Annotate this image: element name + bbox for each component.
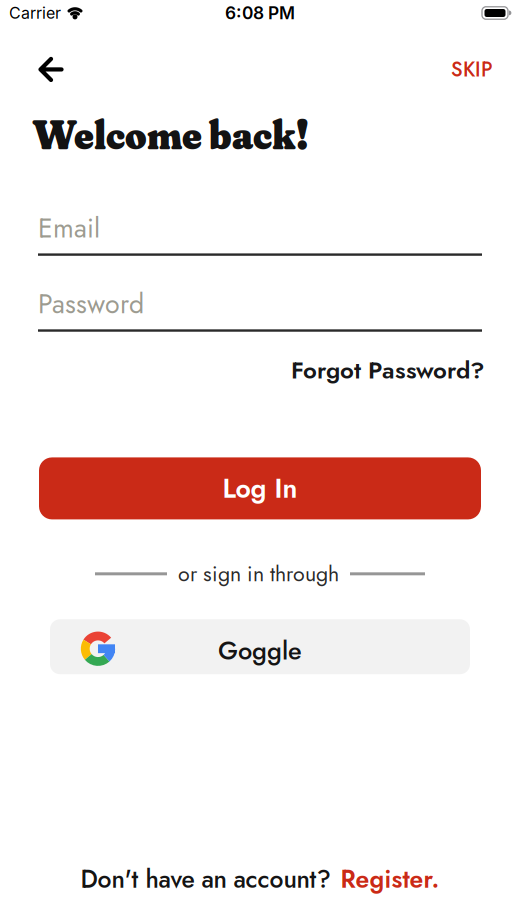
staticText: Email (38, 209, 100, 247)
staticText: Don't have an account? (80, 861, 330, 897)
button[interactable]: Back (38, 57, 63, 81)
staticText: Forgot Password? (291, 353, 485, 387)
button[interactable]: SKIP (451, 55, 493, 84)
staticText: SKIP (451, 55, 493, 84)
staticText: or sign in through (178, 558, 339, 589)
staticText: Register. (340, 861, 439, 897)
staticText: Carrier (9, 3, 61, 23)
button[interactable]: Log In (39, 457, 481, 519)
button[interactable]: Forgot Password? (291, 353, 485, 387)
staticText: Welcome back! (32, 109, 309, 160)
staticText: Log In (222, 469, 297, 508)
textField[interactable]: Email (38, 209, 482, 247)
staticText: Goggle (218, 632, 302, 669)
button[interactable]: Goggle (50, 619, 470, 674)
button[interactable]: Register. (340, 861, 439, 897)
staticText: Password (38, 285, 144, 323)
secureTextField[interactable]: Password (38, 285, 482, 323)
staticText: 6:08 PM (225, 2, 295, 23)
